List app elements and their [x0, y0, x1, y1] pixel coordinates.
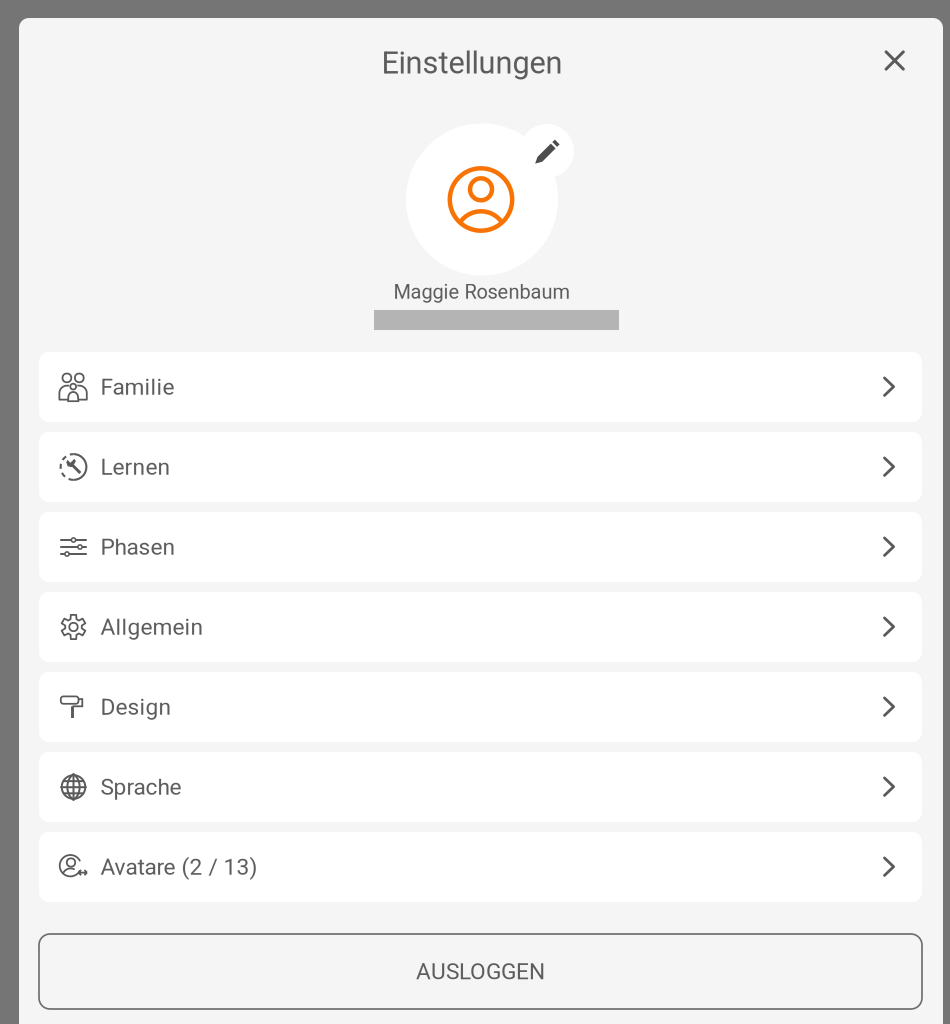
button[interactable]: Allgemein	[39, 592, 922, 662]
button[interactable]: Familie	[39, 352, 922, 422]
staticText: Avatare (2 / 13)	[100, 854, 257, 880]
staticText: Allgemein	[100, 614, 203, 640]
staticText: Design	[100, 694, 171, 720]
button[interactable]: Sprache	[39, 752, 922, 822]
button[interactable]: Design	[39, 672, 922, 742]
staticText: Familie	[100, 374, 174, 400]
button[interactable]: Profilbild bearbeiten	[398, 86, 574, 276]
staticText: Sprache	[100, 774, 181, 800]
staticText: Maggie Rosenbaum	[393, 280, 570, 304]
staticText: Einstellungen	[381, 45, 562, 81]
staticText: AUSLOGGEN	[416, 958, 545, 985]
button[interactable]: Avatare (2 / 13)	[39, 832, 922, 902]
staticText: Phasen	[100, 534, 175, 560]
staticText: Lernen	[100, 454, 170, 480]
button[interactable]: Phasen	[39, 512, 922, 582]
button[interactable]: Schließen	[867, 32, 923, 88]
button[interactable]: Lernen	[39, 432, 922, 502]
button[interactable]: AUSLOGGEN	[39, 934, 922, 1009]
